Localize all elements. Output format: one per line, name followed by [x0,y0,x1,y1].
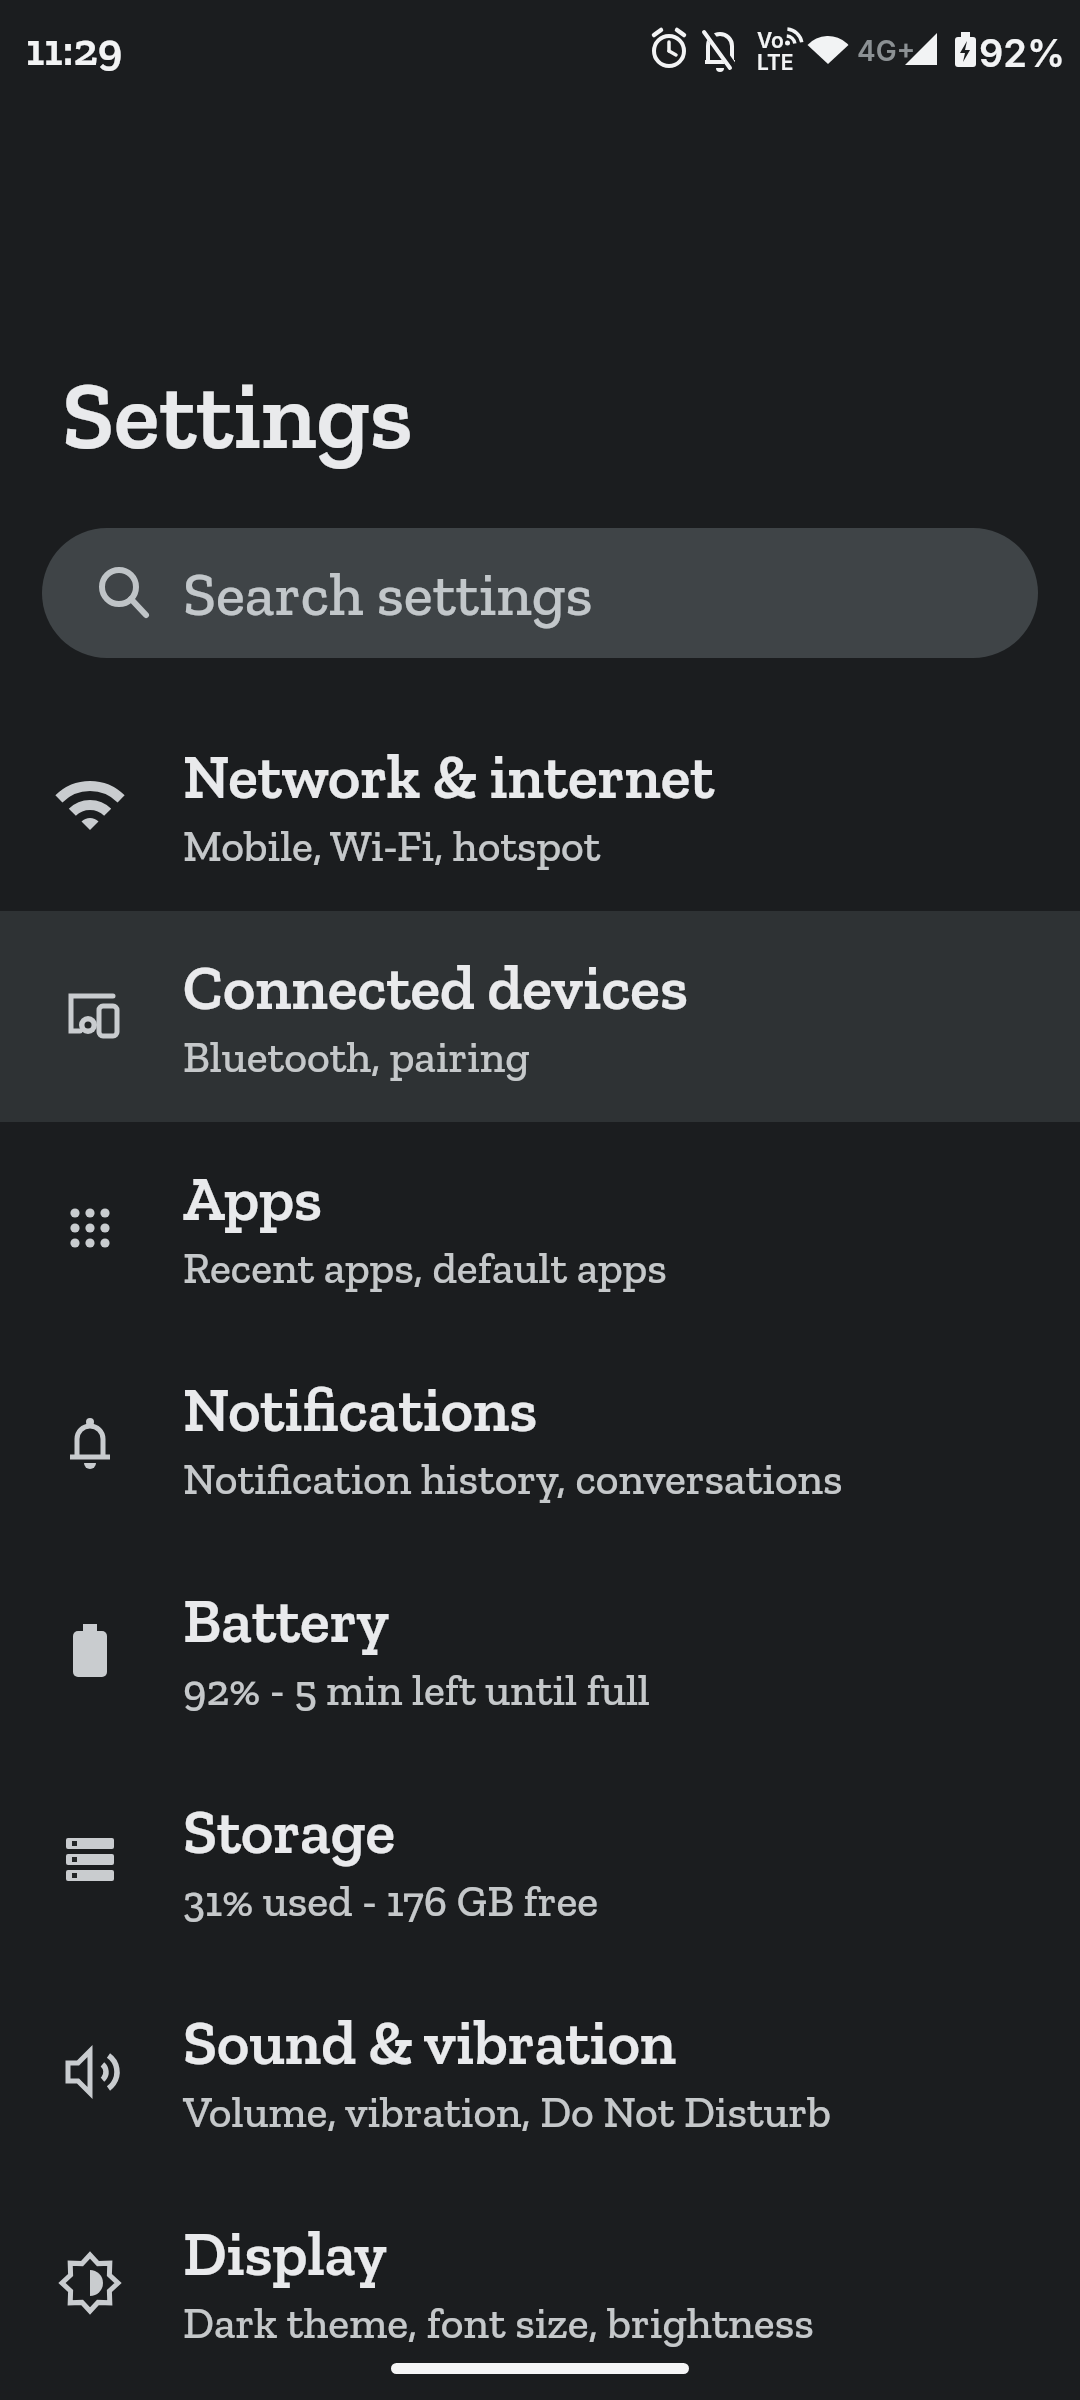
staticText: Battery [183,1583,389,1657]
staticText: 92% - 5 min left until full [183,1663,650,1716]
staticText: Sound & vibration [183,2005,677,2079]
staticText: LTE [757,50,794,75]
staticText: 92% [979,30,1066,76]
button[interactable]: Battery [0,1544,1080,1755]
staticText: Search settings [183,557,593,630]
staticText: Dark theme, font size, brightness [183,2296,814,2349]
staticText: Bluetooth, pairing [183,1030,530,1083]
button[interactable]: Network & internet [0,700,1080,911]
button[interactable]: Apps [0,1122,1080,1333]
staticText: Settings [62,358,413,472]
staticText: Recent apps, default apps [183,1241,667,1294]
button[interactable]: Sound & vibration [0,1966,1080,2177]
staticText: Mobile, Wi-Fi, hotspot [183,819,601,872]
staticText: Volume, vibration, Do Not Disturb [183,2085,832,2138]
staticText: Vo [757,28,784,53]
staticText: 11:29 [26,22,123,77]
button[interactable]: Storage [0,1755,1080,1966]
staticText: Connected devices [183,950,688,1024]
button[interactable]: Search settings [42,528,1038,658]
staticText: Notifications [183,1372,538,1446]
staticText: Network & internet [183,739,715,813]
staticText: Notification history, conversations [183,1452,843,1505]
staticText: Apps [183,1161,323,1235]
staticText: Storage [183,1794,396,1868]
button[interactable]: Notifications [0,1333,1080,1544]
staticText: 4G+ [857,34,916,68]
button[interactable]: Connected devices [0,911,1080,1122]
staticText: 31% used - 176 GB free [183,1874,599,1927]
staticText: Display [183,2216,387,2290]
button[interactable]: Display [0,2177,1080,2388]
